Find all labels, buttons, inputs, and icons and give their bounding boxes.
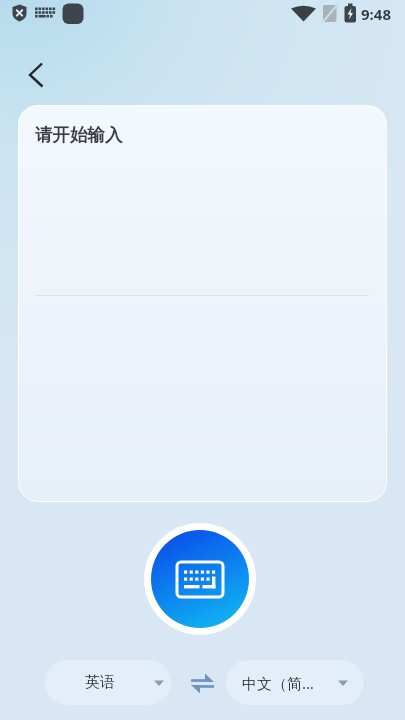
button[interactable] bbox=[18, 57, 54, 93]
button[interactable]: 中文（简… bbox=[226, 660, 364, 705]
staticText: 中文（简… bbox=[242, 673, 314, 693]
button[interactable]: 英语 bbox=[45, 660, 171, 705]
staticText: 请开始输入 bbox=[35, 124, 123, 146]
button[interactable]: 请开始输入 bbox=[18, 105, 387, 502]
button[interactable] bbox=[144, 523, 256, 635]
staticText: 9:48 bbox=[361, 4, 391, 24]
staticText: 英语 bbox=[85, 673, 115, 692]
